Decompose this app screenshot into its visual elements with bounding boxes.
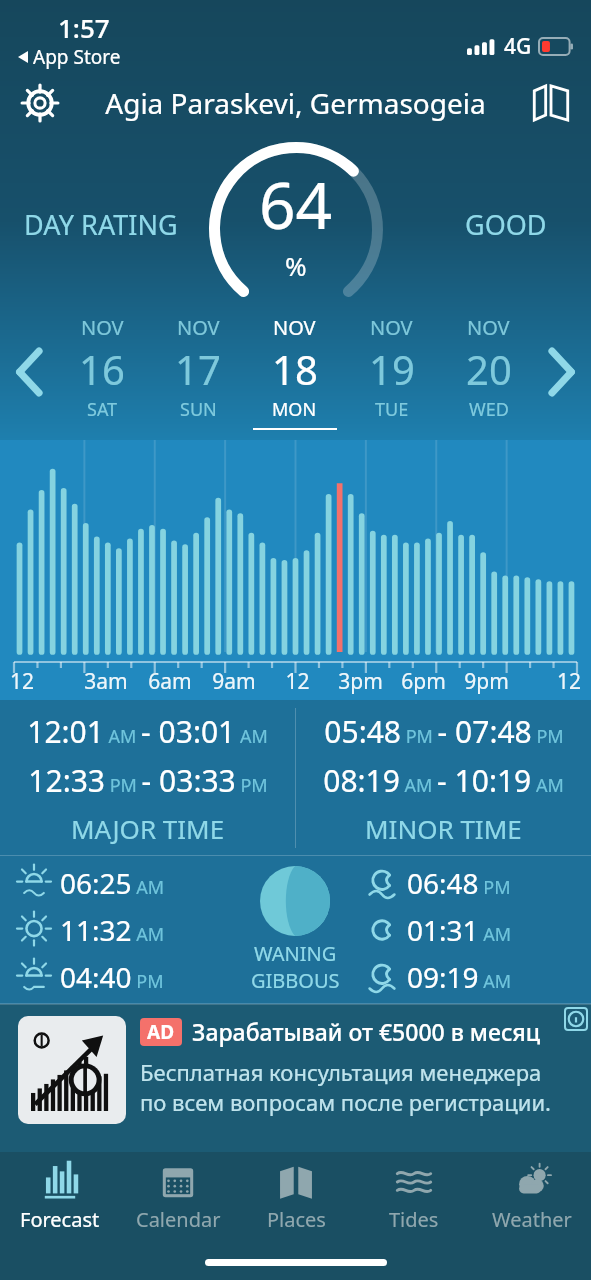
button[interactable]: NOV: [54, 314, 150, 430]
staticText: WED: [469, 397, 509, 422]
staticText: App Store: [33, 44, 121, 70]
button[interactable]: 05:48 PM - 07:48 PM: [296, 700, 591, 856]
button[interactable]: 01:31 AM: [365, 911, 512, 949]
button[interactable]: NOV: [440, 314, 537, 430]
staticText: 18: [272, 342, 318, 396]
staticText: 19: [369, 342, 415, 396]
staticText: 12:33 PM - 03:33 PM: [28, 760, 268, 801]
staticText: 12: [266, 667, 329, 696]
button[interactable]: 06:48 PM: [365, 864, 511, 902]
staticText: SAT: [87, 397, 118, 422]
button[interactable]: Settings: [14, 77, 66, 129]
staticText: Tides: [389, 1206, 439, 1233]
staticText: 6pm: [392, 667, 455, 696]
button[interactable]: 12:01 AM - 03:01 AM: [0, 700, 295, 856]
staticText: MINOR TIME: [365, 811, 522, 846]
button[interactable]: NOV: [343, 314, 440, 430]
staticText: WANING: [254, 940, 337, 967]
staticText: NOV: [273, 314, 316, 341]
button[interactable]: 06:25 AM: [16, 864, 165, 902]
staticText: 9pm: [455, 667, 518, 696]
staticText: MON: [272, 397, 317, 422]
button[interactable]: Map: [525, 77, 577, 129]
staticText: NOV: [177, 314, 220, 341]
staticText: 6am: [138, 667, 202, 696]
button[interactable]: Forecast: [0, 1152, 119, 1244]
button[interactable]: Weather: [473, 1152, 591, 1244]
staticText: 05:48 PM - 07:48 PM: [324, 711, 564, 752]
staticText: AD: [147, 1019, 175, 1045]
button[interactable]: Places: [237, 1152, 355, 1244]
button[interactable]: Next day: [537, 314, 585, 430]
staticText: 11:32 AM: [60, 911, 165, 949]
staticText: 09:19 AM: [407, 958, 512, 996]
staticText: Зарабатывай от €5000 в месяц: [192, 1016, 540, 1047]
staticText: 17: [175, 342, 221, 396]
staticText: 1:57: [58, 10, 110, 45]
button[interactable]: 09:19 AM: [365, 958, 512, 996]
button[interactable]: NOV: [246, 314, 343, 430]
staticText: Calendar: [136, 1206, 221, 1233]
staticText: NOV: [467, 314, 510, 341]
button[interactable]: Ad image: [18, 1016, 126, 1124]
staticText: Agia Paraskevi, Germasogeia: [66, 84, 525, 122]
staticText: 4G: [504, 32, 532, 61]
staticText: Forecast: [20, 1206, 100, 1233]
staticText: NOV: [81, 314, 124, 341]
staticText: 64: [259, 161, 333, 248]
staticText: 12:01 AM - 03:01 AM: [27, 711, 268, 752]
button[interactable]: NOV: [150, 314, 246, 430]
staticText: TUE: [375, 397, 409, 422]
staticText: NOV: [370, 314, 413, 341]
staticText: 16: [79, 342, 125, 396]
staticText: по всем вопросам после регистрации.: [140, 1087, 552, 1117]
staticText: 06:48 PM: [407, 864, 511, 902]
staticText: 9am: [202, 667, 266, 696]
staticText: 3am: [74, 667, 138, 696]
button[interactable]: WANING: [225, 866, 365, 994]
staticText: %: [285, 248, 307, 283]
button[interactable]: Calendar: [119, 1152, 237, 1244]
staticText: 01:31 AM: [407, 911, 512, 949]
button[interactable]: Ad info: [565, 1008, 587, 1030]
staticText: 08:19 AM - 10:19 AM: [323, 760, 564, 801]
staticText: Бесплатная консультация менеджера: [140, 1057, 542, 1087]
staticText: Places: [267, 1206, 326, 1233]
button[interactable]: 11:32 AM: [16, 911, 165, 949]
button[interactable]: 04:40 PM: [16, 958, 164, 996]
button[interactable]: Previous day: [6, 314, 54, 430]
staticText: 04:40 PM: [60, 958, 164, 996]
staticText: GIBBOUS: [251, 967, 340, 994]
staticText: MAJOR TIME: [71, 811, 225, 846]
staticText: 3pm: [329, 667, 392, 696]
staticText: SUN: [180, 397, 217, 422]
staticText: 12: [518, 667, 581, 696]
button[interactable]: Tides: [355, 1152, 473, 1244]
staticText: GOOD: [465, 206, 547, 243]
staticText: Weather: [492, 1206, 572, 1233]
staticText: DAY RATING: [24, 206, 178, 243]
staticText: 12: [10, 667, 74, 696]
staticText: 20: [466, 342, 512, 396]
staticText: 06:25 AM: [60, 864, 165, 902]
